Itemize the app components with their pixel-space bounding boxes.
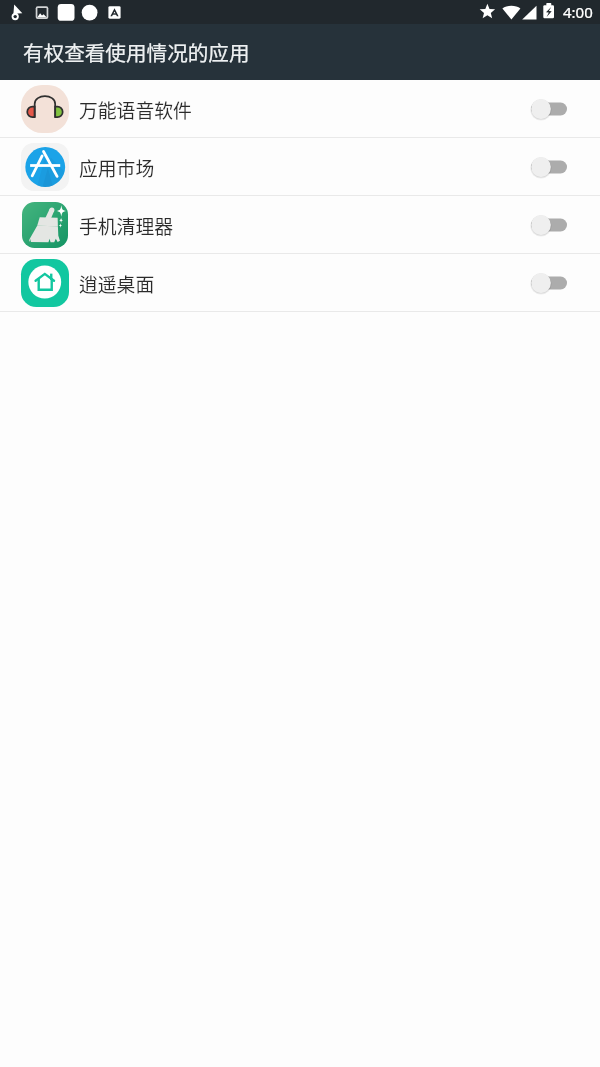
staticText: 应用市场 — [79, 154, 155, 181]
button[interactable]: Toggle usage access — [531, 271, 567, 295]
button[interactable]: Toggle usage access — [531, 213, 567, 237]
staticText: 手机清理器 — [79, 212, 173, 239]
staticText: 有权查看使用情况的应用 — [23, 37, 250, 67]
button[interactable]: 逍遥桌面 — [0, 254, 600, 312]
staticText: 万能语音软件 — [79, 96, 192, 123]
button[interactable]: 手机清理器 — [0, 196, 600, 254]
button[interactable]: Toggle usage access — [531, 97, 567, 121]
button[interactable]: 万能语音软件 — [0, 80, 600, 138]
button[interactable]: 应用市场 — [0, 138, 600, 196]
staticText: 逍遥桌面 — [79, 270, 155, 297]
button[interactable]: Toggle usage access — [531, 155, 567, 179]
staticText: 4:00 — [563, 2, 593, 22]
